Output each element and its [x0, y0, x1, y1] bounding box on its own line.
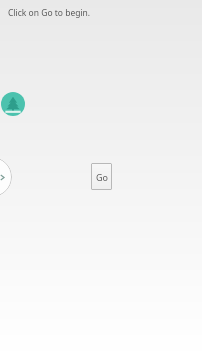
button[interactable]: Forest app [1, 92, 25, 116]
staticText: Go [96, 171, 108, 183]
staticText: Click on Go to begin. [8, 7, 91, 19]
button[interactable]: Go [91, 163, 112, 190]
button[interactable]: Open panel [0, 157, 12, 197]
